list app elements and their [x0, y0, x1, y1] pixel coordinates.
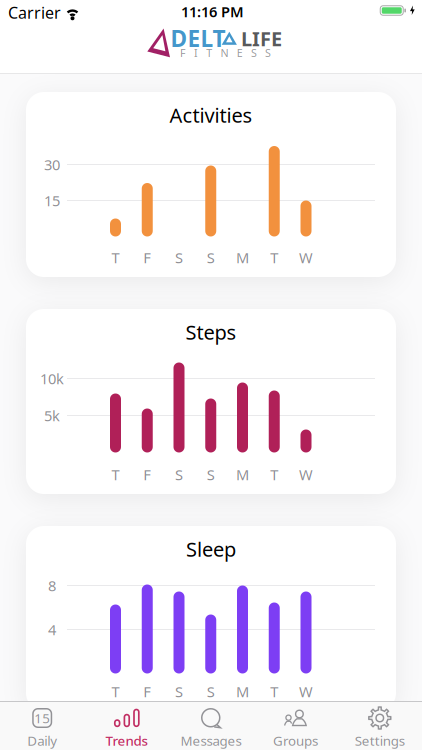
staticText: W	[299, 248, 313, 267]
staticText: M	[236, 682, 249, 701]
staticText: Daily	[27, 732, 57, 749]
staticText: Settings	[355, 732, 405, 749]
staticText: 10k	[40, 369, 64, 388]
staticText: T	[270, 465, 278, 484]
staticText: Groups	[273, 732, 318, 749]
staticText: T	[111, 465, 119, 484]
staticText: M	[236, 248, 249, 267]
staticText: Trends	[106, 732, 148, 749]
staticText: W	[299, 682, 313, 701]
button[interactable]: Trends	[84, 701, 169, 750]
staticText: 8	[48, 576, 56, 595]
staticText: S	[175, 248, 183, 267]
staticText: F	[143, 248, 151, 267]
staticText: 15	[34, 709, 50, 727]
staticText: F	[143, 682, 151, 701]
staticText: M	[236, 465, 249, 484]
staticText: W	[299, 465, 313, 484]
staticText: T	[270, 682, 278, 701]
staticText: Carrier	[8, 2, 61, 23]
staticText: S	[207, 682, 215, 701]
staticText: Steps	[185, 319, 236, 345]
staticText: F I T N E S S	[180, 46, 271, 60]
staticText: Activities	[169, 102, 252, 128]
staticText: LIFE	[241, 25, 282, 52]
staticText: S	[175, 465, 183, 484]
button[interactable]: Groups	[253, 701, 338, 750]
staticText: T	[270, 248, 278, 267]
staticText: 11:16 PM	[181, 2, 244, 21]
staticText: DELT	[170, 23, 225, 53]
staticText: 30	[44, 155, 60, 174]
button[interactable]: Settings	[338, 701, 422, 750]
staticText: 4	[48, 620, 56, 639]
button[interactable]: 15	[0, 701, 84, 750]
staticText: Sleep	[186, 536, 236, 562]
staticText: T	[111, 248, 119, 267]
staticText: 5k	[44, 406, 60, 425]
staticText: F	[143, 465, 151, 484]
staticText: T	[111, 682, 119, 701]
staticText: Messages	[180, 732, 241, 749]
staticText: 15	[44, 191, 60, 210]
staticText: S	[175, 682, 183, 701]
staticText: S	[207, 248, 215, 267]
button[interactable]: Messages	[169, 701, 253, 750]
staticText: S	[207, 465, 215, 484]
